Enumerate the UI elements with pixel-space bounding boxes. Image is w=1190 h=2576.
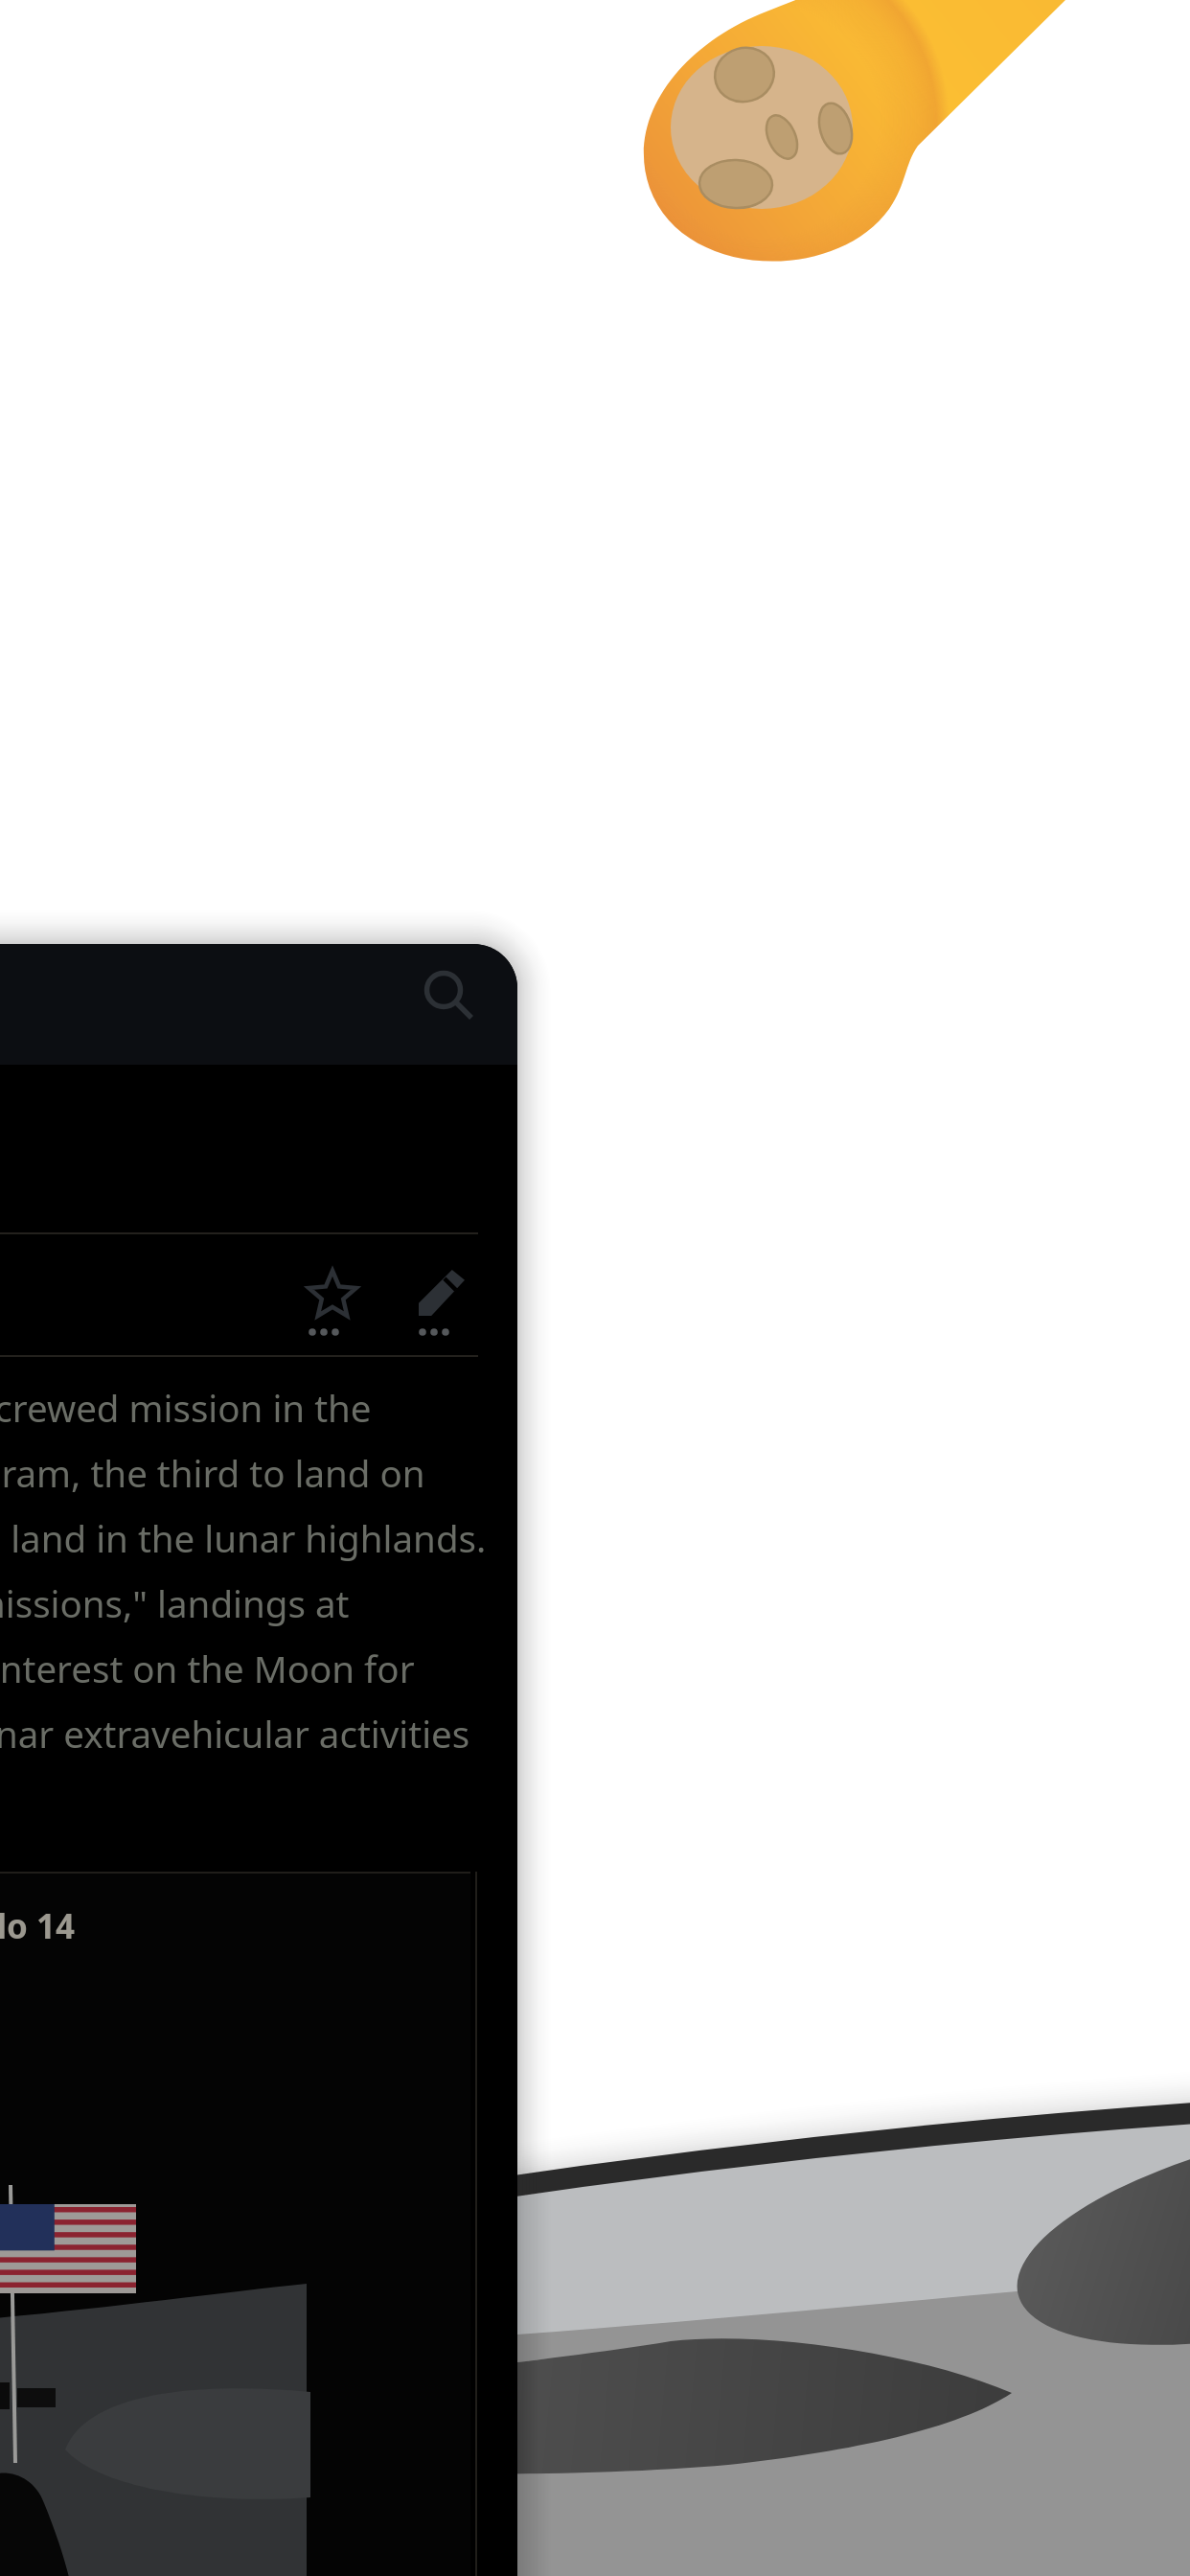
staticText: Apollo 14 was the eighth crewed mission … [0,1383,372,1433]
button[interactable]: Watch [294,1256,371,1333]
staticText: the Moon, and the first to land in the l… [0,1513,487,1563]
staticText: specific sites of scientific interest on… [0,1644,415,1693]
staticText: Apollo 14 [0,1903,76,1949]
button[interactable]: Search [409,954,482,1026]
button[interactable]: Apollo 14 [0,1872,470,2576]
staticText: It was the last of the "H missions," lan… [0,1578,350,1628]
staticText: two-day stays with two lunar extravehicu… [0,1709,470,1759]
staticText: United States Apollo program, the third … [0,1448,425,1498]
button[interactable]: Edit [403,1256,480,1333]
